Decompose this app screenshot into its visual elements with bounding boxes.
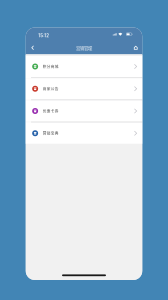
button[interactable]: 优惠卡券 xyxy=(26,100,142,121)
button[interactable]: Home xyxy=(130,41,141,54)
staticText: 15:12 xyxy=(38,33,49,38)
staticText: 优惠卡券 xyxy=(43,108,59,114)
staticText: 营销宝典 xyxy=(43,131,59,136)
button[interactable]: 营销宝典 xyxy=(26,123,142,144)
button[interactable]: 积分商城 xyxy=(26,56,142,77)
staticText: 积分商城 xyxy=(43,64,59,69)
staticText: 商家公告 xyxy=(43,86,59,91)
button[interactable]: Back xyxy=(27,41,38,54)
button[interactable]: 商家公告 xyxy=(26,78,142,99)
staticText: 营销管理 xyxy=(76,45,92,51)
